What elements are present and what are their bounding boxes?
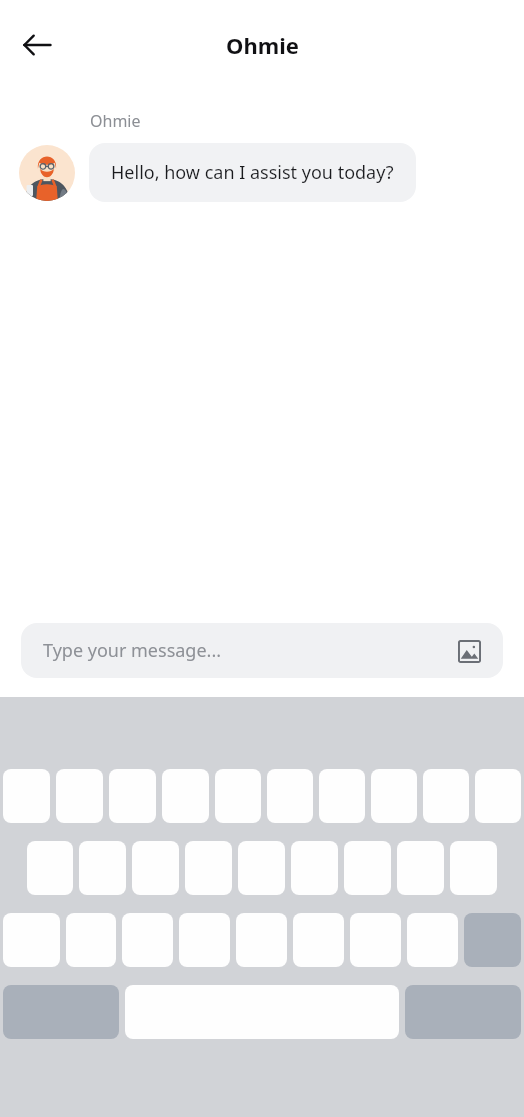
button[interactable]: Letter key bbox=[109, 769, 156, 823]
button[interactable]: Hello, how can I assist you today? bbox=[89, 143, 416, 202]
button[interactable]: Letter key bbox=[236, 913, 287, 967]
button[interactable]: Return bbox=[405, 985, 521, 1039]
button[interactable]: Letter key bbox=[56, 769, 103, 823]
button[interactable]: Shift bbox=[3, 913, 60, 967]
button[interactable]: Letter key bbox=[3, 769, 50, 823]
button[interactable]: Letter key bbox=[450, 841, 497, 895]
staticText: Ohmie bbox=[226, 30, 299, 60]
staticText: Hello, how can I assist you today? bbox=[111, 160, 394, 185]
button[interactable]: Type your message... bbox=[21, 623, 503, 678]
button[interactable]: Letter key bbox=[179, 913, 230, 967]
button[interactable]: Back bbox=[13, 21, 61, 69]
button[interactable]: Letter key bbox=[215, 769, 261, 823]
button[interactable]: Letter key bbox=[238, 841, 285, 895]
button[interactable]: Letter key bbox=[397, 841, 444, 895]
staticText: Ohmie bbox=[90, 110, 141, 132]
button[interactable]: Symbols bbox=[3, 985, 119, 1039]
button[interactable]: Letter key bbox=[162, 769, 209, 823]
button[interactable]: Letter key bbox=[423, 769, 469, 823]
button[interactable]: Letter key bbox=[319, 769, 365, 823]
button[interactable]: Letter key bbox=[291, 841, 338, 895]
button[interactable]: Letter key bbox=[132, 841, 179, 895]
button[interactable]: Letter key bbox=[293, 913, 344, 967]
button[interactable]: Letter key bbox=[407, 913, 458, 967]
button[interactable]: Letter key bbox=[475, 769, 521, 823]
button[interactable]: Letter key bbox=[267, 769, 313, 823]
button[interactable]: Letter key bbox=[27, 841, 73, 895]
button[interactable]: Letter key bbox=[122, 913, 173, 967]
button[interactable]: Letter key bbox=[350, 913, 401, 967]
button[interactable]: Letter key bbox=[344, 841, 391, 895]
staticText: Type your message... bbox=[43, 638, 222, 663]
button[interactable]: Letter key bbox=[371, 769, 417, 823]
button[interactable]: Letter key bbox=[66, 913, 116, 967]
button[interactable]: Attach image bbox=[454, 636, 484, 666]
button[interactable]: Backspace bbox=[464, 913, 521, 967]
button[interactable]: Letter key bbox=[79, 841, 126, 895]
button[interactable]: Letter key bbox=[185, 841, 232, 895]
